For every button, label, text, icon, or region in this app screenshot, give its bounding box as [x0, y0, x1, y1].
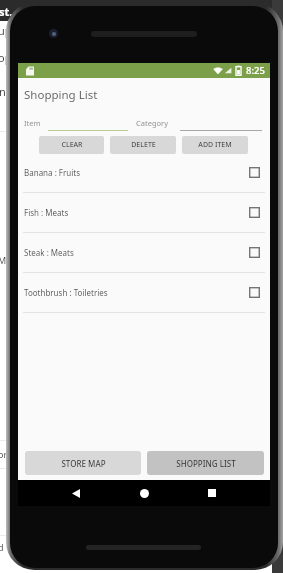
- staticText: 8:25: [246, 64, 265, 77]
- staticText: ADD ITEM: [198, 140, 232, 150]
- staticText: Steak : Meats: [24, 247, 74, 258]
- staticText: Fish : Meats: [24, 207, 69, 218]
- staticText: CLEAR: [61, 140, 83, 150]
- staticText: d: [0, 541, 4, 553]
- button[interactable]: Back: [66, 483, 86, 503]
- button[interactable]: DELETE: [110, 136, 176, 154]
- button[interactable]: Recents: [202, 483, 222, 503]
- staticText: Toothbrush : Toiletries: [24, 287, 108, 298]
- button[interactable]: CLEAR: [39, 136, 104, 154]
- staticText: or: [0, 448, 8, 460]
- button[interactable]: SHOPPING LIST: [147, 451, 264, 475]
- staticText: SHOPPING LIST: [176, 458, 236, 469]
- staticText: Banana : Fruits: [24, 167, 81, 178]
- staticText: M: [0, 254, 7, 266]
- staticText: Item: [24, 118, 41, 128]
- button[interactable]: Home: [134, 483, 154, 503]
- staticText: Category: [136, 118, 168, 128]
- staticText: STORE MAP: [61, 458, 106, 469]
- button[interactable]: Steak : Meats: [18, 233, 270, 273]
- staticText: st.: [0, 4, 13, 19]
- button[interactable]: ADD ITEM: [182, 136, 248, 154]
- button[interactable]: Banana : Fruits: [18, 153, 270, 193]
- staticText: Shopping List: [24, 87, 98, 103]
- staticText: n: [0, 84, 6, 99]
- button[interactable]: Toothbrush : Toiletries: [18, 273, 270, 313]
- staticText: op: [0, 50, 12, 65]
- staticText: up: [0, 23, 12, 38]
- button[interactable]: STORE MAP: [25, 451, 141, 475]
- button[interactable]: Fish : Meats: [18, 193, 270, 233]
- staticText: DELETE: [131, 140, 156, 150]
